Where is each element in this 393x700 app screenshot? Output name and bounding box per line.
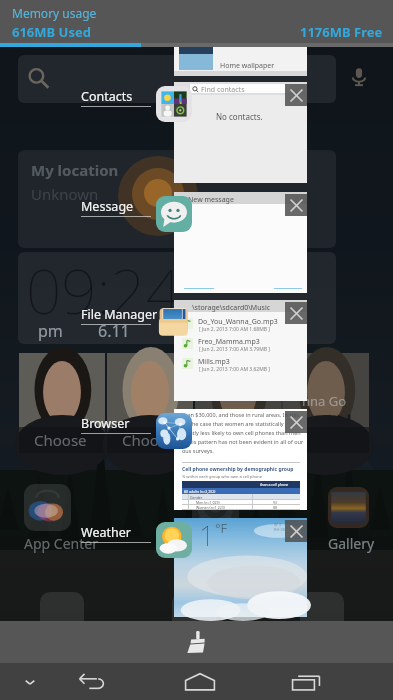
staticText: pm [38, 320, 63, 342]
button[interactable]: Back [60, 663, 122, 700]
staticText: nna Go [302, 392, 347, 410]
staticText: Settings [193, 534, 247, 553]
staticText: Home wallpaper [220, 61, 275, 71]
staticText: No contacts. [216, 111, 263, 122]
staticText: 616MB Used [12, 23, 91, 41]
staticText: 1176MB Free [300, 23, 383, 41]
staticText: Contacts [81, 88, 133, 105]
button[interactable]: Message [174, 192, 307, 293]
staticText: en the case that women are statistically [182, 420, 284, 427]
staticText: Weather [81, 524, 131, 541]
staticText: 88 [273, 505, 278, 510]
staticText: Freo_Mamma.mp3 [198, 337, 260, 347]
staticText: 09:24 [26, 248, 182, 332]
staticText: Unknown [31, 184, 99, 204]
button[interactable]: Recents [274, 663, 338, 700]
staticText: 1 [199, 516, 215, 554]
staticText: 6.11 [98, 320, 130, 342]
staticText: ous surveys. [182, 447, 214, 454]
staticText: Message [81, 198, 134, 215]
staticText: Cell phone ownership by demographic grou… [182, 466, 294, 473]
staticText: Choose [122, 430, 175, 450]
button[interactable]: Hide [0, 663, 60, 700]
button[interactable]: Close Weather [285, 520, 307, 542]
staticText: Memory usage [12, 5, 97, 21]
button[interactable]: Close Contacts [285, 84, 307, 106]
staticText: My location [31, 160, 119, 180]
staticText: h this pattern has not been evident in a… [182, 438, 304, 445]
button[interactable]: Close File Manager [285, 302, 307, 324]
button[interactable]: Close Browser [285, 411, 307, 433]
staticText: Men (n=1,029) [196, 500, 220, 505]
staticText: [ Jun 2, 2013 7:00 AM 3.79MB ] [199, 346, 270, 353]
staticText: [ Jun 2, 2013 7:00 AM 1.68MB ] [199, 326, 270, 333]
staticText: 93 [273, 500, 278, 505]
button[interactable]: Browser [174, 409, 307, 510]
button[interactable]: Home [168, 663, 232, 700]
button[interactable]: Weather [174, 518, 307, 617]
staticText: Choose [34, 430, 87, 450]
button[interactable]: Close Message [285, 194, 307, 216]
staticText: than a cell phone [260, 482, 289, 487]
staticText: % within each group who own a cell phone [182, 474, 263, 479]
button[interactable]: File Manager [174, 300, 307, 401]
staticText: Gender [190, 495, 203, 500]
staticText: All adults (n=2,252) [184, 489, 216, 494]
button[interactable]: Contacts [174, 82, 307, 183]
staticText: New message [188, 195, 234, 205]
staticText: [ Jun 2, 2013 7:00 AM 3.62MB ] [199, 366, 270, 373]
staticText: W 3 RH 00 [274, 522, 286, 532]
staticText: Find contacts [201, 85, 245, 95]
staticText: App Center [24, 534, 98, 553]
staticText: icantly less likely to own cell phones t… [182, 429, 301, 436]
staticText: \storage\sdcard0\Music [192, 303, 271, 313]
staticText: °F [215, 519, 228, 537]
staticText: File Manager [81, 306, 158, 323]
button[interactable]: Clear all tasks [0, 621, 393, 663]
staticText: than $30,000, and those in rural areas. … [182, 411, 299, 418]
staticText: Women (n=1,223) [196, 505, 225, 510]
staticText: Do_You_Wanna_Go.mp3 [198, 317, 278, 327]
staticText: Mills.mp3 [198, 357, 230, 367]
staticText: Gallery [328, 534, 375, 553]
staticText: Browser [81, 415, 130, 432]
